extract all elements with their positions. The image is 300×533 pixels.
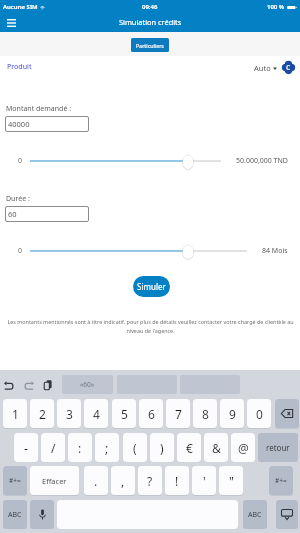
staticText: Aucune SIM — [3, 3, 38, 11]
staticText: & — [212, 440, 221, 456]
staticText: 8 — [202, 406, 209, 422]
button[interactable]: Paste — [42, 379, 54, 391]
staticText: ( — [133, 440, 137, 456]
staticText: ABC — [8, 510, 22, 520]
button[interactable]: «60» — [62, 375, 113, 394]
staticText: «60» — [80, 380, 95, 389]
button[interactable]: Effacer — [30, 466, 79, 495]
button[interactable]: Profile — [282, 61, 295, 74]
staticText: 50.000,000 TND — [236, 156, 288, 166]
button[interactable]: retour — [258, 433, 298, 462]
button[interactable]: 3 — [57, 399, 81, 428]
staticText: 0 — [18, 156, 23, 166]
button[interactable]: Redo — [23, 379, 35, 391]
button[interactable]: 9 — [220, 399, 244, 428]
button[interactable]: ' — [192, 466, 216, 495]
staticText: " — [229, 473, 234, 489]
button[interactable]: 7 — [166, 399, 190, 428]
staticText: Durée : — [6, 194, 30, 204]
staticText: ? — [147, 473, 153, 489]
button[interactable]: : — [68, 433, 92, 462]
staticText: C — [286, 63, 291, 72]
staticText: 2 — [39, 406, 46, 422]
staticText: 60 — [8, 209, 17, 219]
staticText: Montant demandé : — [6, 104, 72, 114]
button[interactable]: Simuler — [133, 276, 170, 297]
staticText: 7 — [175, 406, 182, 422]
button[interactable]: Menu — [2, 13, 21, 32]
button[interactable]: Backspace — [275, 399, 299, 428]
button[interactable]: Undo — [3, 379, 15, 391]
staticText: 9 — [229, 406, 236, 422]
button[interactable]: Auto — [254, 63, 277, 73]
staticText: ! — [175, 473, 179, 489]
button[interactable]: 40000 — [5, 116, 89, 132]
staticText: Auto — [254, 63, 271, 73]
button[interactable]: ? — [138, 466, 162, 495]
staticText: ) — [160, 440, 164, 456]
staticText: Effacer — [42, 476, 67, 486]
button[interactable]: . — [84, 466, 108, 495]
button[interactable]: Hide keyboard — [276, 500, 298, 529]
button[interactable]: 6 — [139, 399, 163, 428]
staticText: 0 — [18, 246, 23, 256]
staticText: Simulation crédits — [119, 17, 182, 27]
button[interactable]: #+= — [3, 466, 27, 495]
button[interactable]: ) — [150, 433, 174, 462]
staticText: € — [186, 440, 193, 456]
button[interactable]: 1 — [3, 399, 27, 428]
button[interactable]: " — [219, 466, 243, 495]
staticText: Les montants mentionnés sont à titre ind… — [7, 318, 294, 325]
staticText: ABC — [248, 510, 262, 520]
button[interactable]: 5 — [112, 399, 136, 428]
staticText: 4 — [93, 406, 100, 422]
staticText: / — [51, 440, 56, 456]
button[interactable]: ; — [95, 433, 119, 462]
button[interactable]: ( — [123, 433, 147, 462]
button[interactable]: Particuliers — [131, 38, 169, 52]
button[interactable]: 8 — [193, 399, 217, 428]
staticText: 40000 — [8, 119, 30, 129]
button[interactable]: , — [111, 466, 135, 495]
staticText: 6 — [148, 406, 155, 422]
button[interactable]: #+= — [269, 466, 293, 495]
staticText: ; — [105, 440, 109, 456]
staticText: - — [24, 440, 28, 456]
staticText: 100 % — [267, 3, 285, 11]
staticText: ' — [203, 473, 206, 489]
staticText: 1 — [12, 406, 19, 422]
staticText: 3 — [66, 406, 73, 422]
button[interactable]: & — [204, 433, 228, 462]
button[interactable]: Produit — [7, 62, 32, 72]
staticText: 84 Mois — [262, 246, 288, 256]
staticText: Simuler — [137, 281, 166, 292]
staticText: . — [94, 473, 98, 489]
staticText: niveau de l'agence. — [126, 327, 175, 334]
button[interactable]: 0 — [247, 399, 271, 428]
button[interactable]: € — [177, 433, 201, 462]
staticText: @ — [238, 440, 249, 456]
staticText: retour — [266, 442, 290, 453]
staticText: #+= — [9, 476, 21, 485]
staticText: 09:46 — [142, 3, 158, 11]
button[interactable]: ABC — [243, 500, 267, 529]
button[interactable]: ABC — [3, 500, 27, 529]
button[interactable]: 60 — [5, 206, 89, 222]
button[interactable]: 2 — [30, 399, 54, 428]
button[interactable]: - — [14, 433, 38, 462]
button[interactable]: Dictation — [30, 500, 54, 529]
button[interactable]: ! — [165, 466, 189, 495]
staticText: 5 — [121, 406, 128, 422]
staticText: #+= — [275, 476, 287, 485]
staticText: 0 — [256, 406, 263, 422]
button[interactable]: @ — [231, 433, 255, 462]
button[interactable]: / — [41, 433, 65, 462]
staticText: : — [78, 440, 82, 456]
staticText: , — [121, 473, 125, 489]
staticText: Particuliers — [136, 42, 164, 49]
button[interactable]: 4 — [84, 399, 108, 428]
